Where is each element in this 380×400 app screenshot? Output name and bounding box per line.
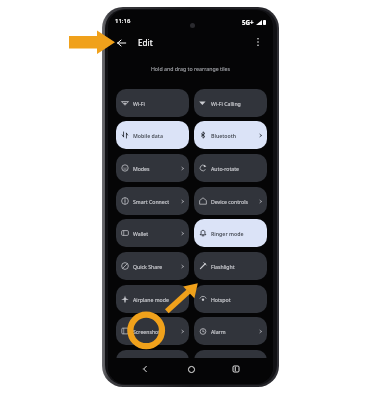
button[interactable]: More options — [251, 35, 265, 49]
button[interactable]: Airplane mode — [116, 285, 189, 313]
button[interactable]: Modes — [116, 154, 189, 182]
staticText: Bluetooth — [211, 132, 258, 139]
staticText: Ringer mode — [211, 230, 258, 237]
staticText: Modes — [133, 165, 180, 172]
button[interactable]: Wi-Fi — [116, 89, 189, 117]
staticText: Device controls — [211, 198, 258, 205]
button[interactable]: Alarm — [194, 317, 267, 345]
staticText: Alarm — [211, 328, 258, 335]
button[interactable]: Mobile data — [116, 121, 189, 149]
button[interactable]: Wallet — [116, 219, 189, 247]
staticText: Flashlight — [211, 263, 258, 270]
button[interactable]: Home — [183, 361, 199, 377]
button[interactable]: Quick Share — [116, 252, 189, 280]
staticText: Wi-Fi — [133, 100, 180, 107]
button[interactable]: Hotspot — [194, 285, 267, 313]
staticText: Hotspot — [211, 296, 258, 303]
staticText: 5G+ — [242, 18, 254, 26]
button[interactable]: Device controls — [194, 187, 267, 215]
button[interactable]: Recents — [228, 361, 244, 377]
button[interactable]: Back — [137, 361, 153, 377]
staticText: 11:16 — [115, 17, 131, 25]
button[interactable]: Auto-rotate — [194, 154, 267, 182]
staticText: Mobile data — [133, 132, 180, 139]
button[interactable]: Back — [114, 35, 129, 50]
button[interactable]: Ringer mode — [194, 219, 267, 247]
button[interactable]: Wi-Fi Calling — [194, 89, 267, 117]
staticText: Wallet — [133, 230, 180, 237]
staticText: Hold and drag to rearrange tiles — [108, 65, 273, 72]
staticText: Wi-Fi Calling — [211, 100, 258, 107]
button[interactable]: Screenshot — [116, 317, 189, 345]
staticText: Quick Share — [133, 263, 180, 270]
staticText: Auto-rotate — [211, 165, 258, 172]
staticText: Smart Connect — [133, 198, 180, 205]
staticText: Edit — [138, 37, 153, 48]
button[interactable]: Flashlight — [194, 252, 267, 280]
staticText: Airplane mode — [133, 296, 180, 303]
button[interactable]: Bluetooth — [194, 121, 267, 149]
button[interactable]: Smart Connect — [116, 187, 189, 215]
staticText: Screenshot — [133, 328, 180, 335]
